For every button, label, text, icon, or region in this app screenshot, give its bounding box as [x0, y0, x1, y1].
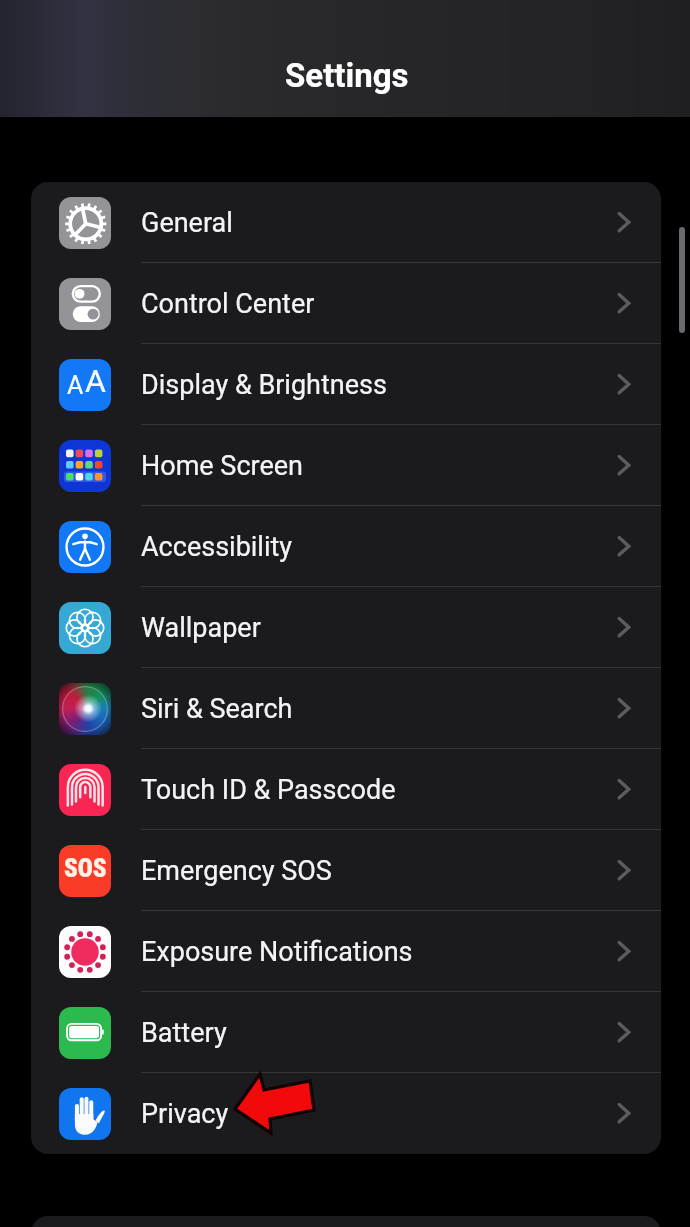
- button[interactable]: General: [31, 182, 661, 263]
- button[interactable]: Battery: [31, 992, 661, 1073]
- button[interactable]: Siri & Search: [31, 668, 661, 749]
- button[interactable]: Wallpaper: [31, 587, 661, 668]
- staticText: A: [67, 371, 84, 400]
- staticText: Siri & Search: [141, 693, 293, 725]
- button[interactable]: Display & Brightness: [31, 344, 661, 425]
- staticText: Control Center: [141, 288, 315, 320]
- staticText: SOS: [64, 854, 107, 883]
- staticText: Settings: [285, 56, 409, 95]
- staticText: Exposure Notifications: [141, 936, 413, 968]
- button[interactable]: Touch ID & Passcode: [31, 749, 661, 830]
- button[interactable]: Emergency SOS: [31, 830, 661, 911]
- staticText: Home Screen: [141, 450, 303, 482]
- button[interactable]: Exposure Notifications: [31, 911, 661, 992]
- button[interactable]: Privacy: [31, 1073, 661, 1154]
- staticText: Battery: [141, 1017, 227, 1049]
- other: Pointer annotation highlighting Privacy: [231, 1070, 319, 1138]
- staticText: Accessibility: [141, 531, 293, 563]
- button[interactable]: Home Screen: [31, 425, 661, 506]
- staticText: Wallpaper: [141, 612, 261, 644]
- staticText: General: [141, 207, 233, 239]
- staticText: A: [85, 362, 106, 400]
- staticText: Privacy: [141, 1098, 229, 1130]
- staticText: Touch ID & Passcode: [141, 774, 396, 806]
- staticText: Emergency SOS: [141, 855, 332, 887]
- button[interactable]: Control Center: [31, 263, 661, 344]
- staticText: Display & Brightness: [141, 369, 387, 401]
- button[interactable]: Accessibility: [31, 506, 661, 587]
